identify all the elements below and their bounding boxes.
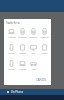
staticText: Car — [32, 68, 36, 71]
staticText: CANCEL — [36, 78, 47, 82]
staticText: Tablet — [41, 52, 48, 55]
staticText: Speaker — [18, 36, 27, 39]
button[interactable]: Tablet — [39, 44, 50, 59]
staticText: Phone — [8, 68, 15, 71]
button[interactable]: Speaker — [17, 28, 28, 43]
staticText: Speaker — [40, 36, 49, 39]
button[interactable]: Speaker — [28, 28, 39, 43]
button[interactable]: Tablet — [17, 44, 28, 59]
button[interactable]: Speaker — [39, 28, 50, 43]
staticText: On Phone — [11, 90, 24, 94]
staticText: Switch to — [6, 21, 20, 25]
staticText: Speaker — [29, 36, 38, 39]
button[interactable]: Car — [28, 60, 39, 75]
button[interactable]: Phone — [6, 60, 17, 75]
button[interactable]: CANCEL — [34, 77, 49, 83]
button[interactable]: On Phone — [0, 89, 64, 95]
button[interactable]: Phone — [6, 44, 17, 59]
staticText: Laptop — [19, 68, 27, 71]
button[interactable]: Laptop — [6, 28, 17, 43]
staticText: Tablet — [19, 52, 26, 55]
staticText: TV — [32, 52, 35, 55]
staticText: Laptop — [8, 36, 16, 39]
staticText: Phone — [8, 52, 15, 55]
button[interactable]: TV — [28, 44, 39, 59]
button[interactable]: Laptop — [17, 60, 28, 75]
